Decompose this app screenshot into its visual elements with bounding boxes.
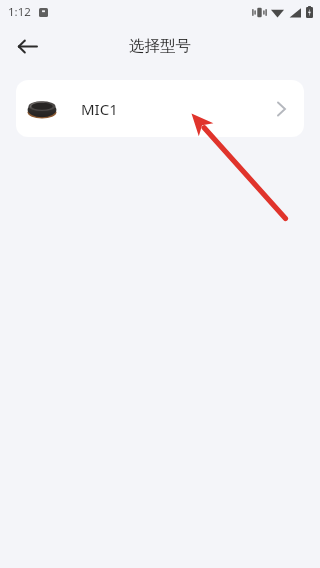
button[interactable]: Back	[9, 28, 45, 64]
staticText: 选择型号	[129, 36, 191, 56]
staticText: 1:12	[8, 4, 31, 20]
button[interactable]: MIC1	[16, 80, 304, 137]
staticText: MIC1	[81, 99, 118, 119]
